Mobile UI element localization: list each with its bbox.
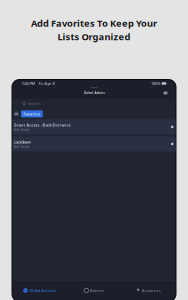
staticText: Alarms [90, 288, 104, 293]
staticText: Global Actions [83, 91, 104, 95]
button[interactable]: All lists [13, 111, 19, 116]
button[interactable]: Alarms [67, 288, 121, 293]
staticText: Grant Access - Back Entrance [13, 122, 70, 127]
staticText: 7:04 PM Fri Apr 8 [21, 81, 54, 86]
button[interactable]: Grant Access - Back Entrance [12, 119, 175, 134]
button[interactable]: Accounts [121, 288, 175, 293]
staticText: Tech Check [13, 128, 28, 132]
button[interactable]: Global Actions [12, 288, 67, 293]
staticText: Lockdown [13, 139, 31, 144]
button[interactable]: Menu [161, 90, 169, 96]
button[interactable]: Favorites [21, 110, 43, 117]
staticText: Accounts [142, 288, 161, 293]
staticText: Lists Organized [57, 30, 130, 43]
staticText: 100% [151, 81, 160, 86]
staticText: Global Actions [29, 288, 56, 293]
staticText: Favorites [23, 111, 40, 116]
button[interactable]: Lockdown [12, 136, 175, 151]
staticText: Tech Check [13, 145, 28, 149]
staticText: Add Favorites To Keep Your [31, 17, 157, 29]
staticText: Search [28, 101, 40, 106]
